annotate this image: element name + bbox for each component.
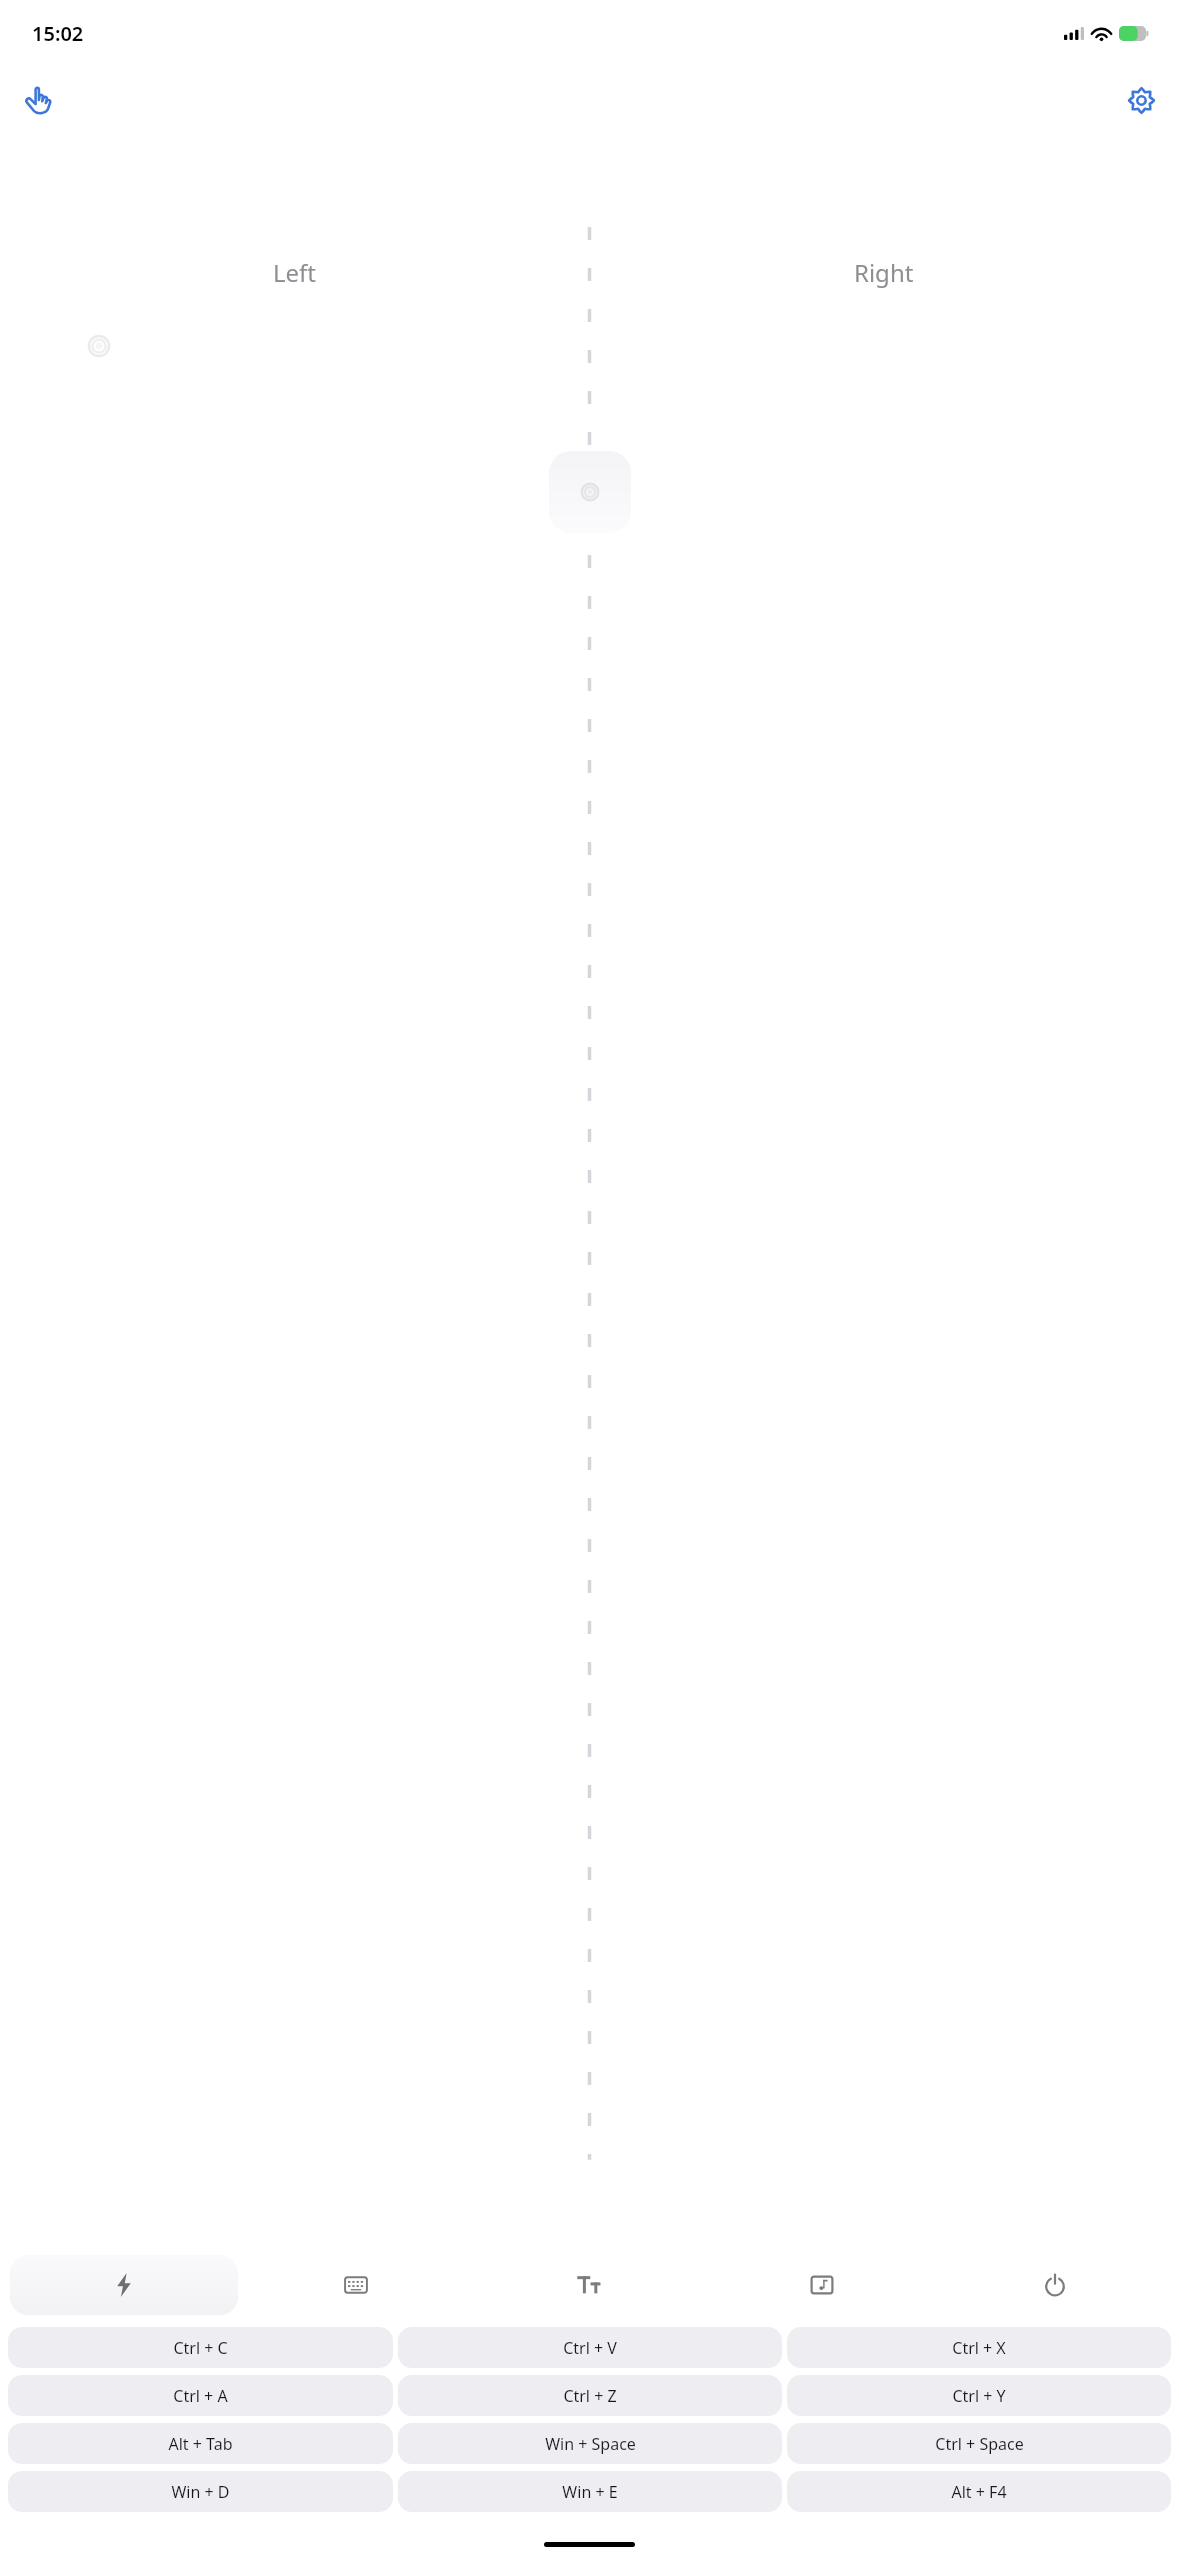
staticText: Win + D bbox=[171, 2481, 230, 2503]
button[interactable]: Keyboard bbox=[242, 2255, 470, 2315]
button[interactable]: Scroll pad bbox=[549, 451, 631, 533]
staticText: Ctrl + A bbox=[173, 2385, 228, 2407]
button[interactable]: Touch mode bbox=[14, 76, 62, 124]
button[interactable]: Ctrl + Z bbox=[398, 2375, 782, 2416]
staticText: Right bbox=[854, 256, 914, 289]
staticText: Ctrl + Y bbox=[952, 2385, 1006, 2407]
staticText: Ctrl + Space bbox=[935, 2433, 1024, 2455]
staticText: Left bbox=[273, 256, 317, 289]
staticText: Ctrl + C bbox=[173, 2337, 228, 2359]
button[interactable]: Settings bbox=[1117, 76, 1165, 124]
staticText: Ctrl + V bbox=[563, 2337, 617, 2359]
button[interactable]: Media bbox=[707, 2255, 936, 2315]
button[interactable]: Win + E bbox=[398, 2471, 782, 2512]
button[interactable]: Ctrl + V bbox=[398, 2327, 782, 2368]
button[interactable]: Left bbox=[0, 256, 589, 289]
button[interactable]: Shortcuts bbox=[10, 2255, 238, 2315]
staticText: Alt + Tab bbox=[168, 2433, 233, 2455]
staticText: Ctrl + Z bbox=[563, 2385, 617, 2407]
staticText: Alt + F4 bbox=[951, 2481, 1007, 2503]
button[interactable]: Alt + F4 bbox=[787, 2471, 1171, 2512]
button[interactable]: Power bbox=[940, 2255, 1169, 2315]
button[interactable]: Ctrl + Space bbox=[787, 2423, 1171, 2464]
button[interactable]: Ctrl + C bbox=[8, 2327, 393, 2368]
button[interactable]: Text size bbox=[474, 2255, 703, 2315]
button[interactable]: Ctrl + X bbox=[787, 2327, 1171, 2368]
button[interactable]: Win + D bbox=[8, 2471, 393, 2512]
button[interactable]: Alt + Tab bbox=[8, 2423, 393, 2464]
button[interactable]: Ctrl + Y bbox=[787, 2375, 1171, 2416]
staticText: Win + Space bbox=[545, 2433, 636, 2455]
staticText: 15:02 bbox=[32, 20, 84, 47]
button[interactable]: Win + Space bbox=[398, 2423, 782, 2464]
button[interactable]: Right bbox=[589, 256, 1179, 289]
staticText: Win + E bbox=[562, 2481, 618, 2503]
button[interactable]: Ctrl + A bbox=[8, 2375, 393, 2416]
staticText: Ctrl + X bbox=[952, 2337, 1006, 2359]
